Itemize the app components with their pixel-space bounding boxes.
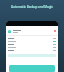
button[interactable] [8, 46, 56, 49]
button[interactable] [8, 40, 56, 43]
button[interactable] [8, 43, 56, 46]
button[interactable] [8, 28, 56, 34]
staticText: Automatic Backup and Magic [11, 5, 53, 9]
button[interactable] [8, 49, 56, 52]
button[interactable]: Continue [9, 65, 55, 72]
button[interactable] [8, 37, 56, 40]
